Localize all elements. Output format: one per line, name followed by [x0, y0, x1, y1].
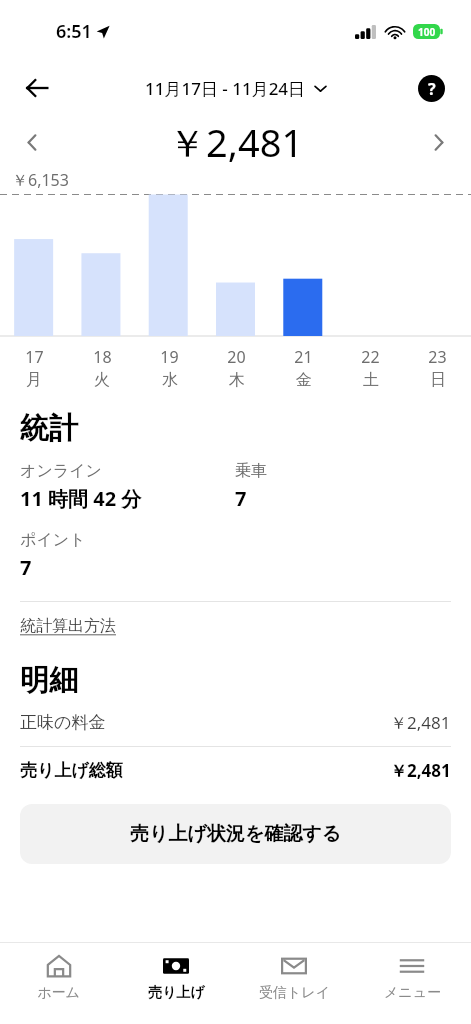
staticText: 売り上げ [148, 984, 205, 1002]
staticText: 7 [20, 554, 32, 581]
button[interactable]: 統計算出方法 [20, 616, 116, 636]
staticText: 正味の料金 [20, 712, 106, 733]
staticText: 19 [160, 346, 179, 368]
staticText: ? [428, 78, 436, 100]
staticText: 売り上げ状況を確認する [130, 822, 342, 846]
staticText: 売り上げ総額 [20, 760, 123, 781]
staticText: 水 [162, 370, 178, 390]
button[interactable]: Help [411, 68, 451, 108]
staticText: 金 [296, 370, 312, 390]
staticText: 明細 [20, 662, 78, 699]
staticText: 月 [26, 370, 42, 390]
staticText: 日 [430, 370, 446, 390]
staticText: ￥2,481 [390, 711, 451, 734]
staticText: 土 [363, 370, 379, 390]
button[interactable]: 売り上げ総額 [20, 759, 451, 782]
staticText: ￥6,153 [12, 169, 69, 191]
button[interactable]: 受信トレイ [235, 943, 353, 1024]
button[interactable]: メニュー [353, 943, 471, 1024]
staticText: 21 [294, 346, 313, 368]
staticText: ￥2,481 [168, 116, 304, 168]
staticText: 17 [25, 346, 44, 368]
staticText: オンライン [20, 461, 102, 481]
staticText: 乗車 [235, 461, 267, 481]
button[interactable]: ホーム [0, 943, 117, 1024]
staticText: 18 [93, 346, 112, 368]
staticText: 受信トレイ [259, 984, 330, 1002]
staticText: ポイント [20, 530, 86, 550]
staticText: 100 [418, 25, 436, 39]
button[interactable]: Next week [419, 122, 459, 162]
staticText: 23 [428, 346, 447, 368]
staticText: 統計 [20, 410, 78, 447]
button[interactable]: 正味の料金 [20, 711, 451, 734]
staticText: 火 [94, 370, 110, 390]
staticText: 11月17日 - 11月24日 [145, 77, 306, 100]
button[interactable]: 売り上げ [117, 943, 235, 1024]
staticText: 6:51 [56, 19, 92, 44]
staticText: メニュー [384, 984, 441, 1002]
staticText: 20 [227, 346, 246, 368]
staticText: 22 [361, 346, 380, 368]
button[interactable]: 売り上げ状況を確認する [20, 804, 451, 864]
button[interactable]: Previous week [12, 122, 52, 162]
staticText: ￥2,481 [390, 759, 451, 782]
staticText: 木 [229, 370, 245, 390]
staticText: ホーム [37, 984, 80, 1002]
staticText: 11 時間 42 分 [20, 485, 142, 512]
staticText: 7 [235, 485, 247, 512]
button[interactable]: Back [14, 65, 60, 111]
button[interactable]: 11月17日 - 11月24日 [145, 77, 327, 100]
